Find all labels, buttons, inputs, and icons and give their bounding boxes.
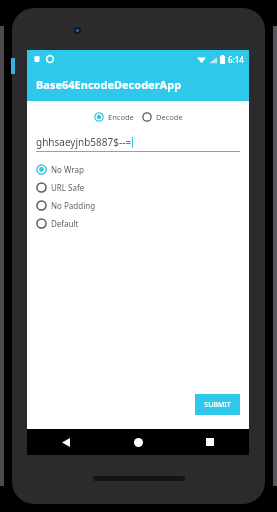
staticText: URL Safe: [51, 182, 85, 193]
button[interactable]: No Wrap: [36, 164, 84, 175]
staticText: Decode: [156, 112, 183, 122]
staticText: Base64EncodeDecoderApp: [36, 77, 182, 92]
button[interactable]: Decode: [142, 112, 183, 122]
button[interactable]: No Padding: [36, 200, 96, 211]
button[interactable]: ghhsaeyjnb5887$--=: [36, 135, 240, 152]
staticText: No Wrap: [51, 164, 84, 175]
staticText: ghhsaeyjnb5887$--=: [36, 135, 132, 149]
button[interactable]: Default: [36, 218, 79, 229]
staticText: No Padding: [51, 200, 96, 211]
button[interactable]: Recent apps: [199, 431, 221, 453]
button[interactable]: URL Safe: [36, 182, 85, 193]
button[interactable]: Encode: [94, 112, 134, 122]
button[interactable]: Home: [127, 431, 149, 453]
staticText: Encode: [108, 112, 134, 122]
button[interactable]: SUBMIT: [195, 394, 240, 415]
staticText: Default: [51, 218, 79, 229]
button[interactable]: Back: [55, 431, 77, 453]
staticText: SUBMIT: [204, 400, 231, 410]
staticText: 6:14: [228, 54, 244, 65]
